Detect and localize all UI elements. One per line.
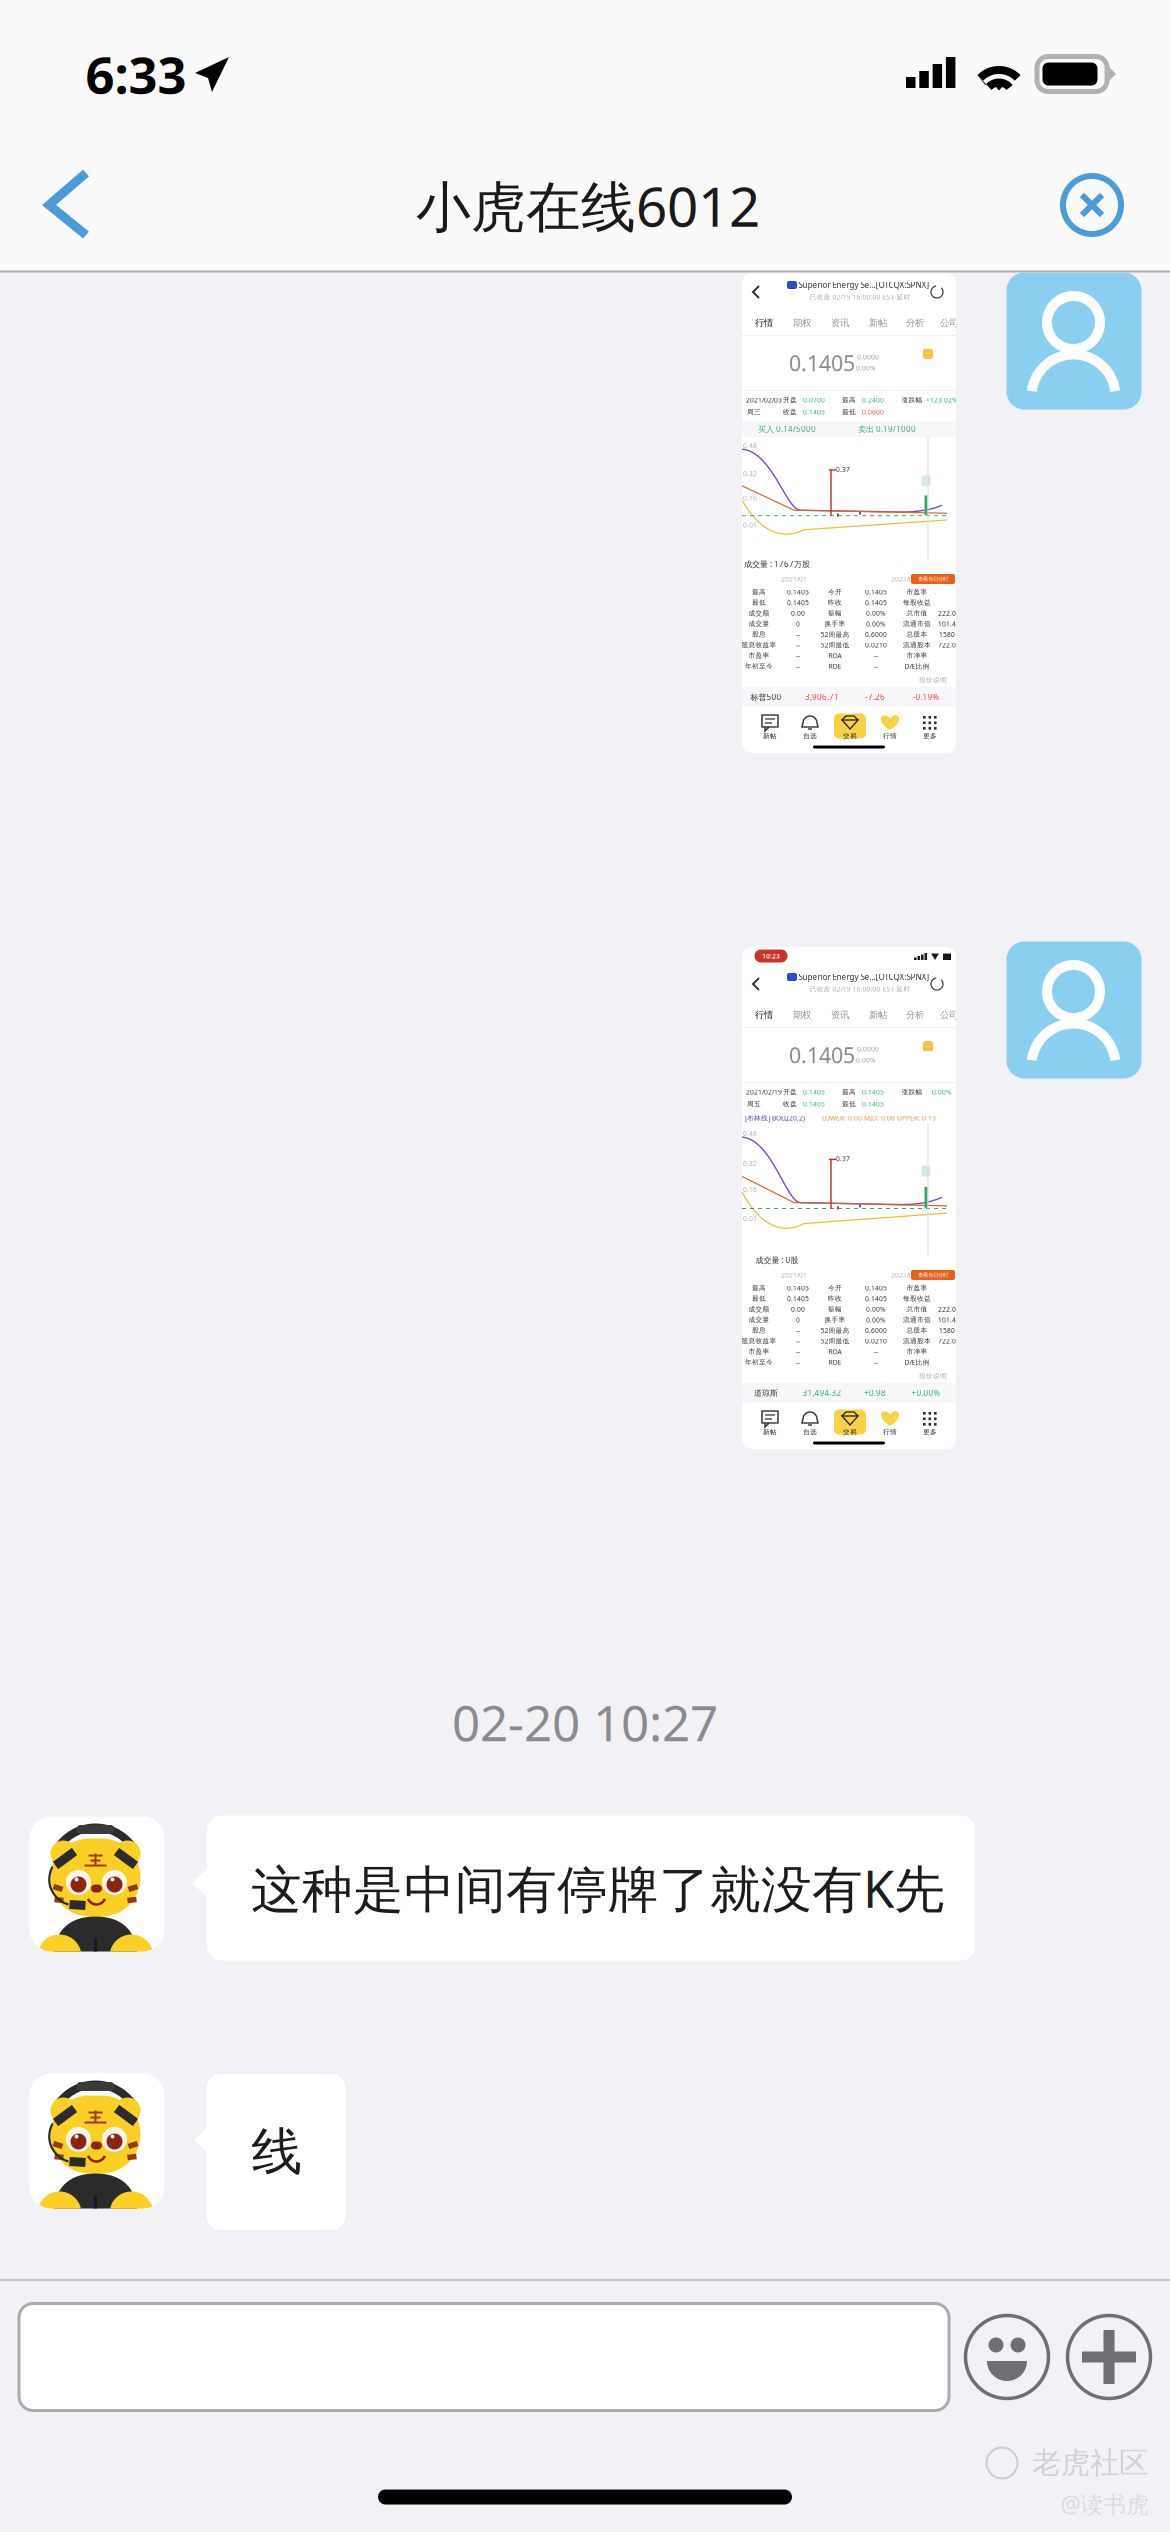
staticText: 0.1405: [787, 1294, 809, 1303]
staticText: 年初至今: [745, 1358, 773, 1366]
staticText: 0.00: [791, 1305, 805, 1314]
staticText: 0.00%: [866, 1305, 886, 1314]
staticText: 最低: [752, 598, 766, 607]
staticText: -0.19%: [912, 692, 939, 702]
staticText: 行情: [755, 1009, 773, 1021]
staticText: 0.16: [743, 494, 757, 502]
staticText: 1580: [939, 1326, 955, 1335]
staticText: LOWER: 0.00 MID: 0.00 UPPER: 0.13: [822, 1114, 936, 1122]
staticText: 流通市值: [903, 620, 931, 628]
staticText: 收盘: [783, 408, 797, 416]
staticText: 2021/0: [891, 575, 913, 583]
staticText: 股息: [752, 630, 766, 638]
staticText: 公司: [940, 317, 958, 329]
button[interactable]: Back: [0, 127, 130, 272]
staticText: 0.1405: [865, 1294, 887, 1303]
staticText: 行情: [755, 317, 773, 329]
staticText: 0.1405: [789, 1041, 855, 1069]
staticText: 101.4: [938, 1315, 956, 1324]
staticText: 最高: [842, 396, 856, 404]
staticText: 101.4: [938, 619, 956, 628]
staticText: 成交量: [748, 1316, 769, 1324]
staticText: 新帖: [869, 317, 887, 329]
staticText: --: [796, 641, 800, 649]
staticText: 52周最高: [820, 1326, 849, 1335]
staticText: 0.1405: [787, 598, 809, 607]
staticText: 交易: [843, 1428, 857, 1436]
staticText: 报价说明: [919, 676, 947, 684]
staticText: 市盈率: [906, 588, 927, 596]
staticText: 卖出 0.19/1000: [858, 424, 916, 434]
staticText: 0.6000: [865, 630, 887, 639]
staticText: 报价说明: [919, 1372, 947, 1380]
staticText: 0.37: [836, 1154, 850, 1163]
staticText: ROA: [828, 1347, 841, 1356]
staticText: 道琼斯: [754, 1388, 778, 1398]
staticText: 公司: [940, 1009, 958, 1021]
staticText: 0.16: [743, 1185, 757, 1194]
staticText: 最低: [752, 1294, 766, 1303]
staticText: Superior Energy Se...[OTCQX:SPNX]: [798, 280, 929, 290]
staticText: 0.32: [743, 1159, 757, 1168]
staticText: 流通股本: [903, 641, 931, 649]
staticText: 31,494.32: [802, 1388, 841, 1398]
staticText: 总市值: [906, 609, 927, 617]
staticText: --: [796, 651, 800, 660]
staticText: 2021/01: [781, 575, 807, 583]
staticText: 222.0: [938, 1305, 956, 1314]
staticText: --: [796, 662, 800, 671]
staticText: 0.0210: [865, 641, 887, 649]
staticText: 小虎在线6012: [416, 169, 760, 242]
staticText: 昨收: [828, 598, 842, 607]
staticText: 市盈率: [748, 651, 769, 660]
staticText: +0.98: [864, 1388, 886, 1398]
staticText: 0.00%: [866, 619, 886, 628]
staticText: 0.6000: [865, 1326, 887, 1335]
staticText: 分析: [906, 1009, 924, 1021]
staticText: D/E比例: [904, 1358, 929, 1367]
staticText: 年初至今: [745, 662, 773, 670]
staticText: 0.00%: [856, 364, 876, 372]
staticText: 新帖: [869, 1009, 887, 1021]
staticText: --: [796, 1337, 800, 1345]
staticText: ROA: [828, 651, 841, 660]
staticText: 0.1405: [862, 1088, 884, 1096]
staticText: 0.0000: [857, 1045, 879, 1053]
staticText: 0.0700: [803, 396, 825, 404]
staticText: 0.1405: [803, 1088, 825, 1096]
staticText: 0.1405: [789, 349, 855, 377]
staticText: 2021/01: [781, 1271, 807, 1279]
button[interactable]: More options: [1059, 2279, 1159, 2435]
staticText: 成交量 : 1767万股: [744, 559, 810, 569]
staticText: 0.00%: [866, 609, 886, 618]
staticText: 0.00%: [932, 1088, 952, 1096]
staticText: --: [874, 651, 878, 660]
staticText: 市净率: [906, 1347, 927, 1356]
staticText: --: [796, 1358, 800, 1367]
staticText: 资讯: [831, 317, 849, 329]
staticText: 今开: [828, 588, 842, 596]
staticText: 更多: [923, 732, 937, 740]
staticText: 新帖: [763, 1428, 777, 1436]
staticText: --: [796, 1347, 800, 1356]
staticText: 昨收: [828, 1294, 842, 1303]
staticText: 振幅: [828, 609, 842, 617]
staticText: 成交量 : 0股: [755, 1255, 798, 1265]
staticText: 0.1405: [803, 408, 825, 416]
staticText: 行情: [883, 1428, 897, 1436]
button[interactable]: Close: [1027, 127, 1157, 272]
staticText: 今开: [828, 1284, 842, 1292]
staticText: 查看当日分时: [918, 1272, 948, 1278]
staticText: 0.00%: [856, 1056, 876, 1064]
staticText: 振幅: [828, 1305, 842, 1313]
staticText: 0.00: [791, 609, 805, 618]
staticText: ROE: [828, 1358, 841, 1367]
staticText: 722.0: [938, 641, 956, 649]
staticText: --: [874, 1358, 878, 1367]
button[interactable]: Emoji keyboard: [957, 2279, 1057, 2435]
staticText: [布林线] BOLL(20,2): [745, 1114, 805, 1122]
staticText: 收盘: [783, 1100, 797, 1108]
staticText: 2021/02/03: [746, 396, 782, 404]
staticText: 股息收益率: [741, 1337, 776, 1345]
staticText: Superior Energy Se...[OTCQX:SPNX]: [798, 972, 929, 982]
